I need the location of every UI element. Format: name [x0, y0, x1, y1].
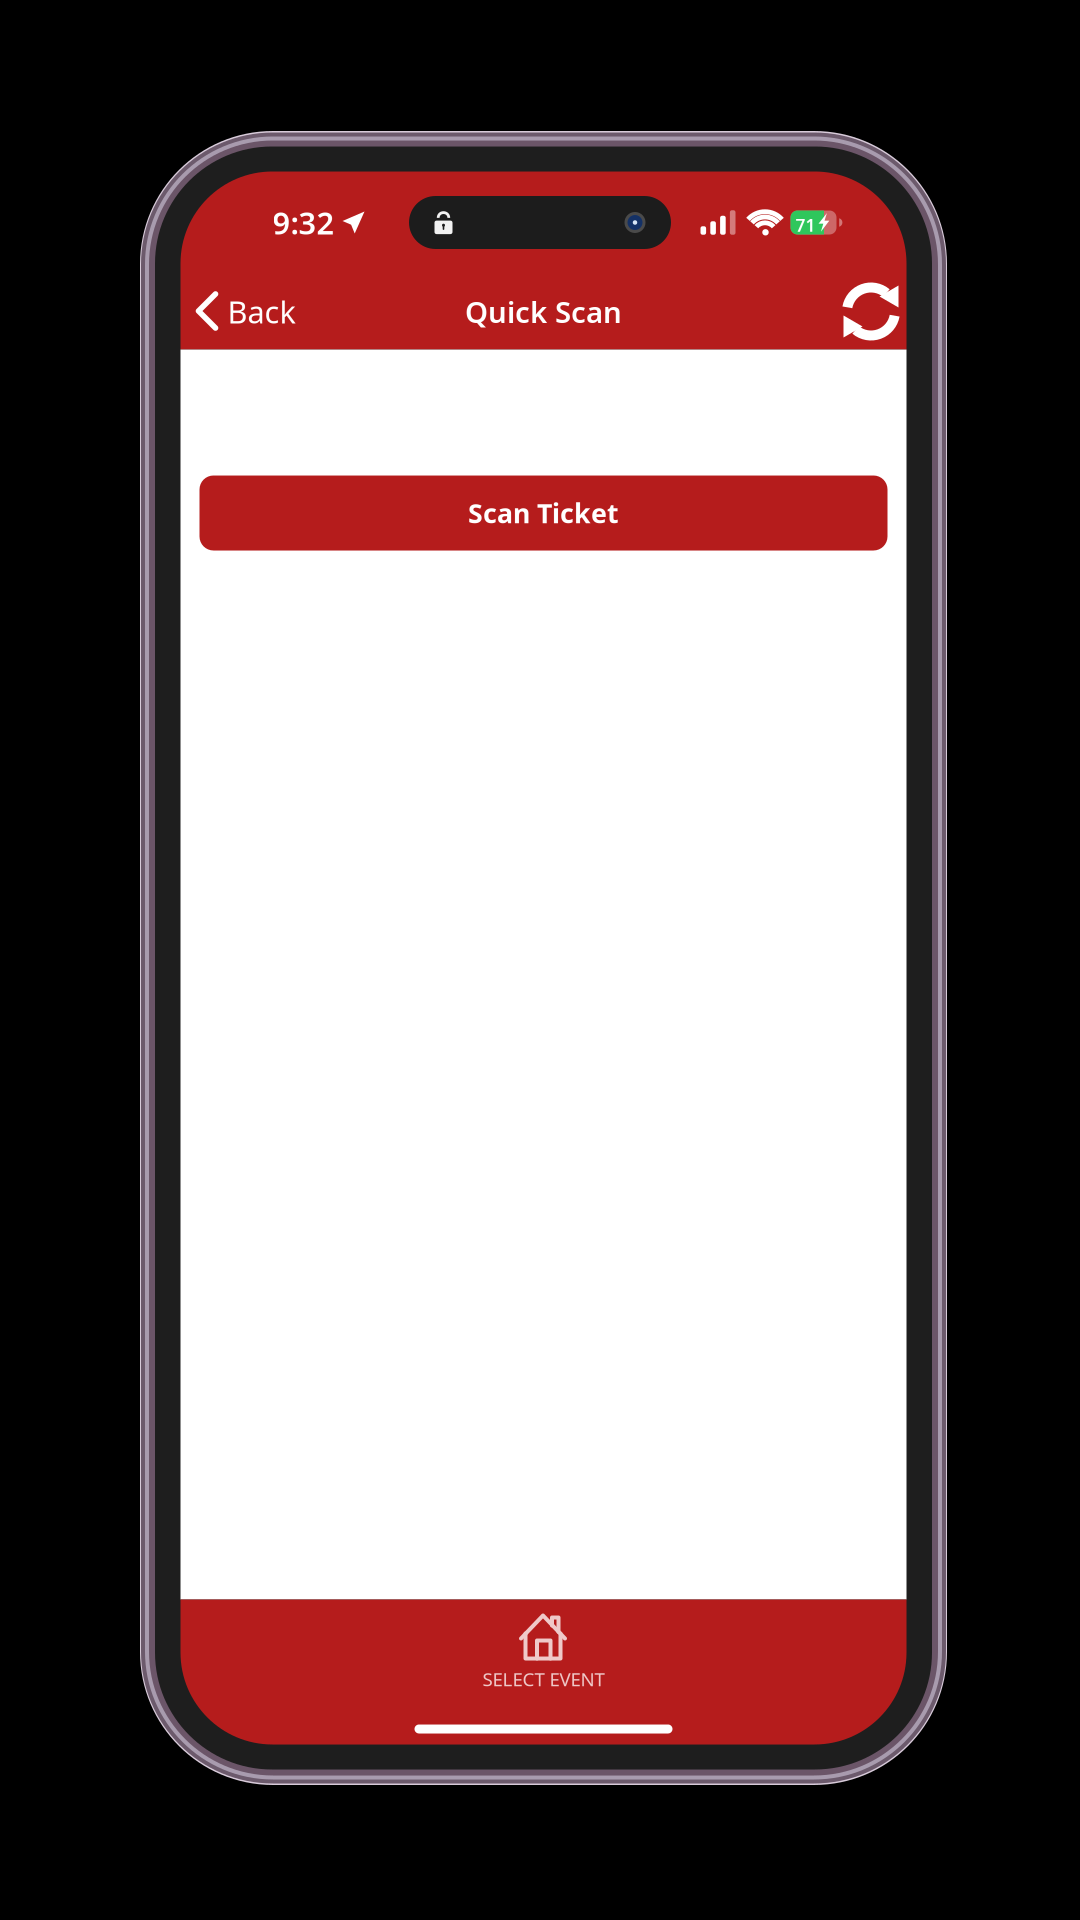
staticText: SELECT EVENT	[482, 1666, 604, 1691]
staticText: Back	[227, 291, 295, 332]
staticText: Scan Ticket	[468, 495, 619, 531]
button[interactable]: Back	[180, 273, 309, 349]
button[interactable]: Refresh	[842, 273, 906, 349]
staticText: 9:32	[272, 202, 334, 243]
staticText: 71	[795, 213, 815, 236]
button[interactable]: SELECT EVENT	[393, 1599, 693, 1694]
staticText: Quick Scan	[465, 292, 622, 331]
button[interactable]: Scan Ticket	[199, 475, 887, 550]
